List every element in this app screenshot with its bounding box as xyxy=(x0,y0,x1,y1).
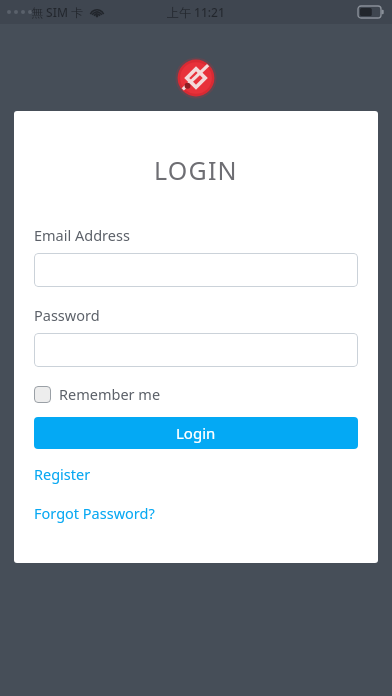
staticText: 無 SIM 卡 xyxy=(31,4,84,20)
staticText: Login xyxy=(176,423,216,443)
staticText: 上午 11:21 xyxy=(167,4,225,20)
staticText: LOGIN xyxy=(154,153,238,187)
staticText: Email Address xyxy=(34,225,130,245)
button[interactable]: Register xyxy=(34,464,91,484)
button[interactable]: Login xyxy=(34,417,358,449)
button[interactable] xyxy=(34,253,358,287)
button[interactable]: Remember me xyxy=(34,382,161,406)
button[interactable]: Forgot Password? xyxy=(34,503,155,523)
staticText: Remember me xyxy=(59,384,161,404)
staticText: Forgot Password? xyxy=(34,503,155,523)
staticText: Register xyxy=(34,464,91,484)
button[interactable] xyxy=(34,333,358,367)
staticText: Password xyxy=(34,305,100,325)
